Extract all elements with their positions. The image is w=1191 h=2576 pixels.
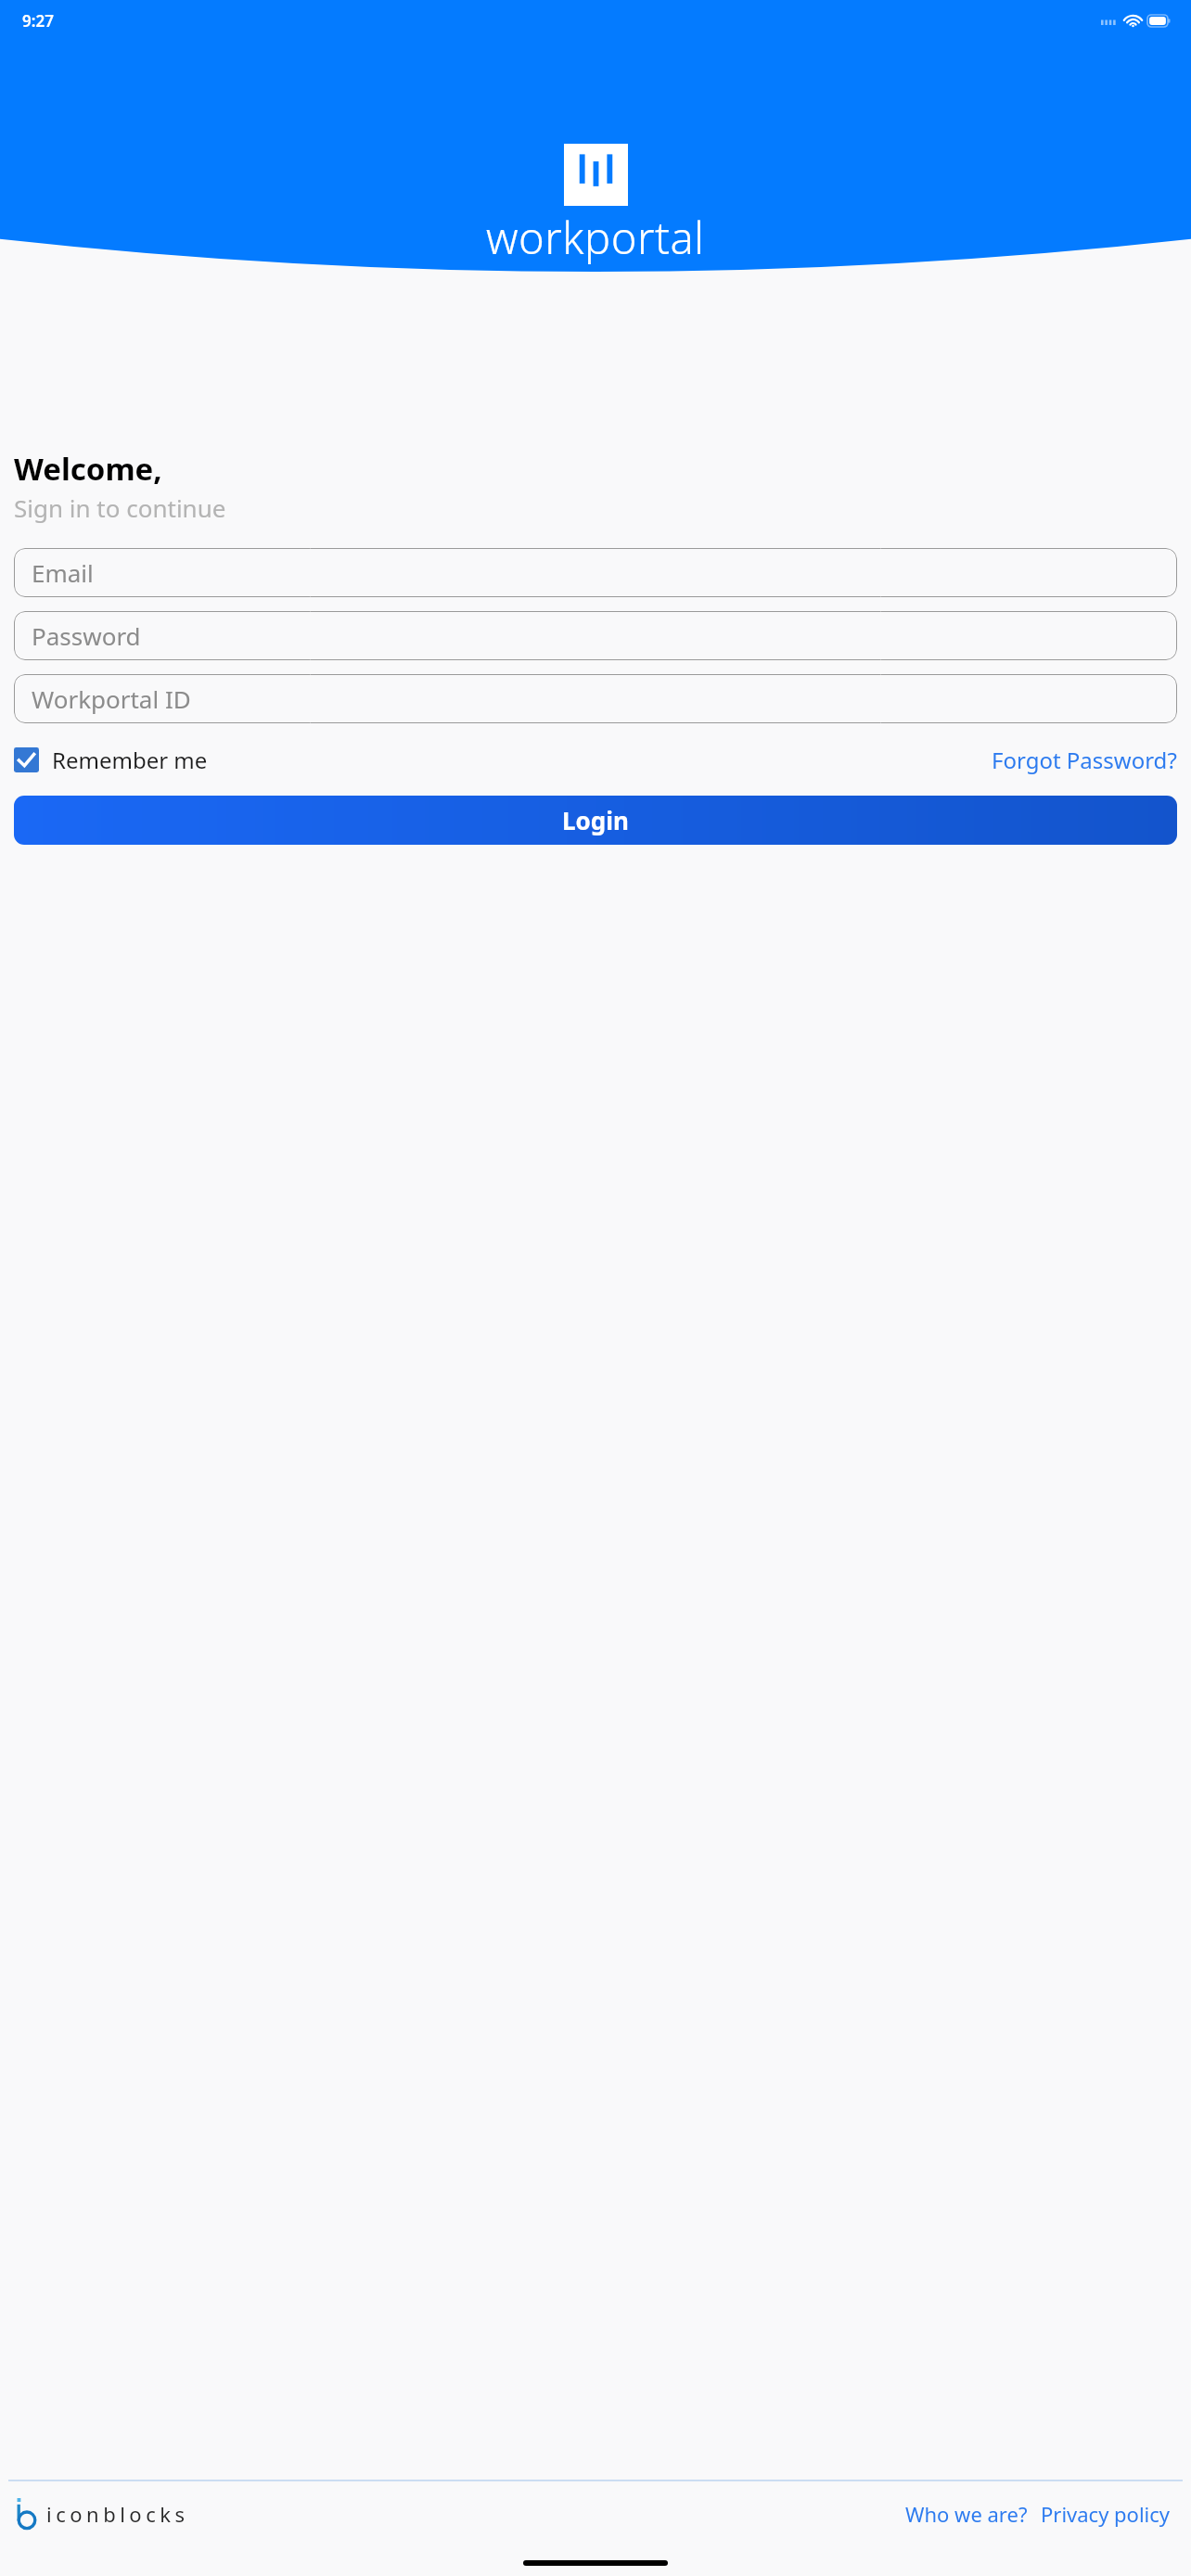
staticText: Login bbox=[562, 804, 629, 836]
button[interactable]: Login bbox=[14, 796, 1177, 845]
staticText: Sign in to continue bbox=[14, 491, 226, 524]
staticText: iconblocks bbox=[46, 2500, 189, 2528]
staticText: 9:27 bbox=[22, 10, 54, 32]
staticText: Remember me bbox=[52, 745, 208, 775]
staticText: Forgot Password? bbox=[992, 745, 1177, 775]
button[interactable]: Who we are? bbox=[905, 2500, 1041, 2528]
staticText: Welcome, bbox=[14, 448, 162, 490]
staticText: workportal bbox=[486, 208, 705, 267]
other: iconblocks logo bbox=[17, 2498, 37, 2530]
button[interactable]: Password bbox=[14, 611, 1177, 660]
button[interactable]: Privacy policy bbox=[1041, 2500, 1171, 2528]
button[interactable]: Email bbox=[14, 548, 1177, 597]
staticText: Email bbox=[32, 556, 94, 589]
button[interactable]: Remember me checkbox bbox=[14, 745, 213, 775]
staticText: Password bbox=[32, 619, 141, 652]
button[interactable]: Workportal ID bbox=[14, 674, 1177, 723]
staticText: Who we are? bbox=[905, 2500, 1028, 2528]
staticText: Privacy policy bbox=[1041, 2500, 1171, 2528]
button[interactable]: iconblocks logo bbox=[17, 2498, 189, 2530]
other: Remember me checkbox bbox=[14, 747, 39, 772]
staticText: Workportal ID bbox=[32, 682, 191, 715]
button[interactable]: Forgot Password? bbox=[992, 745, 1177, 775]
